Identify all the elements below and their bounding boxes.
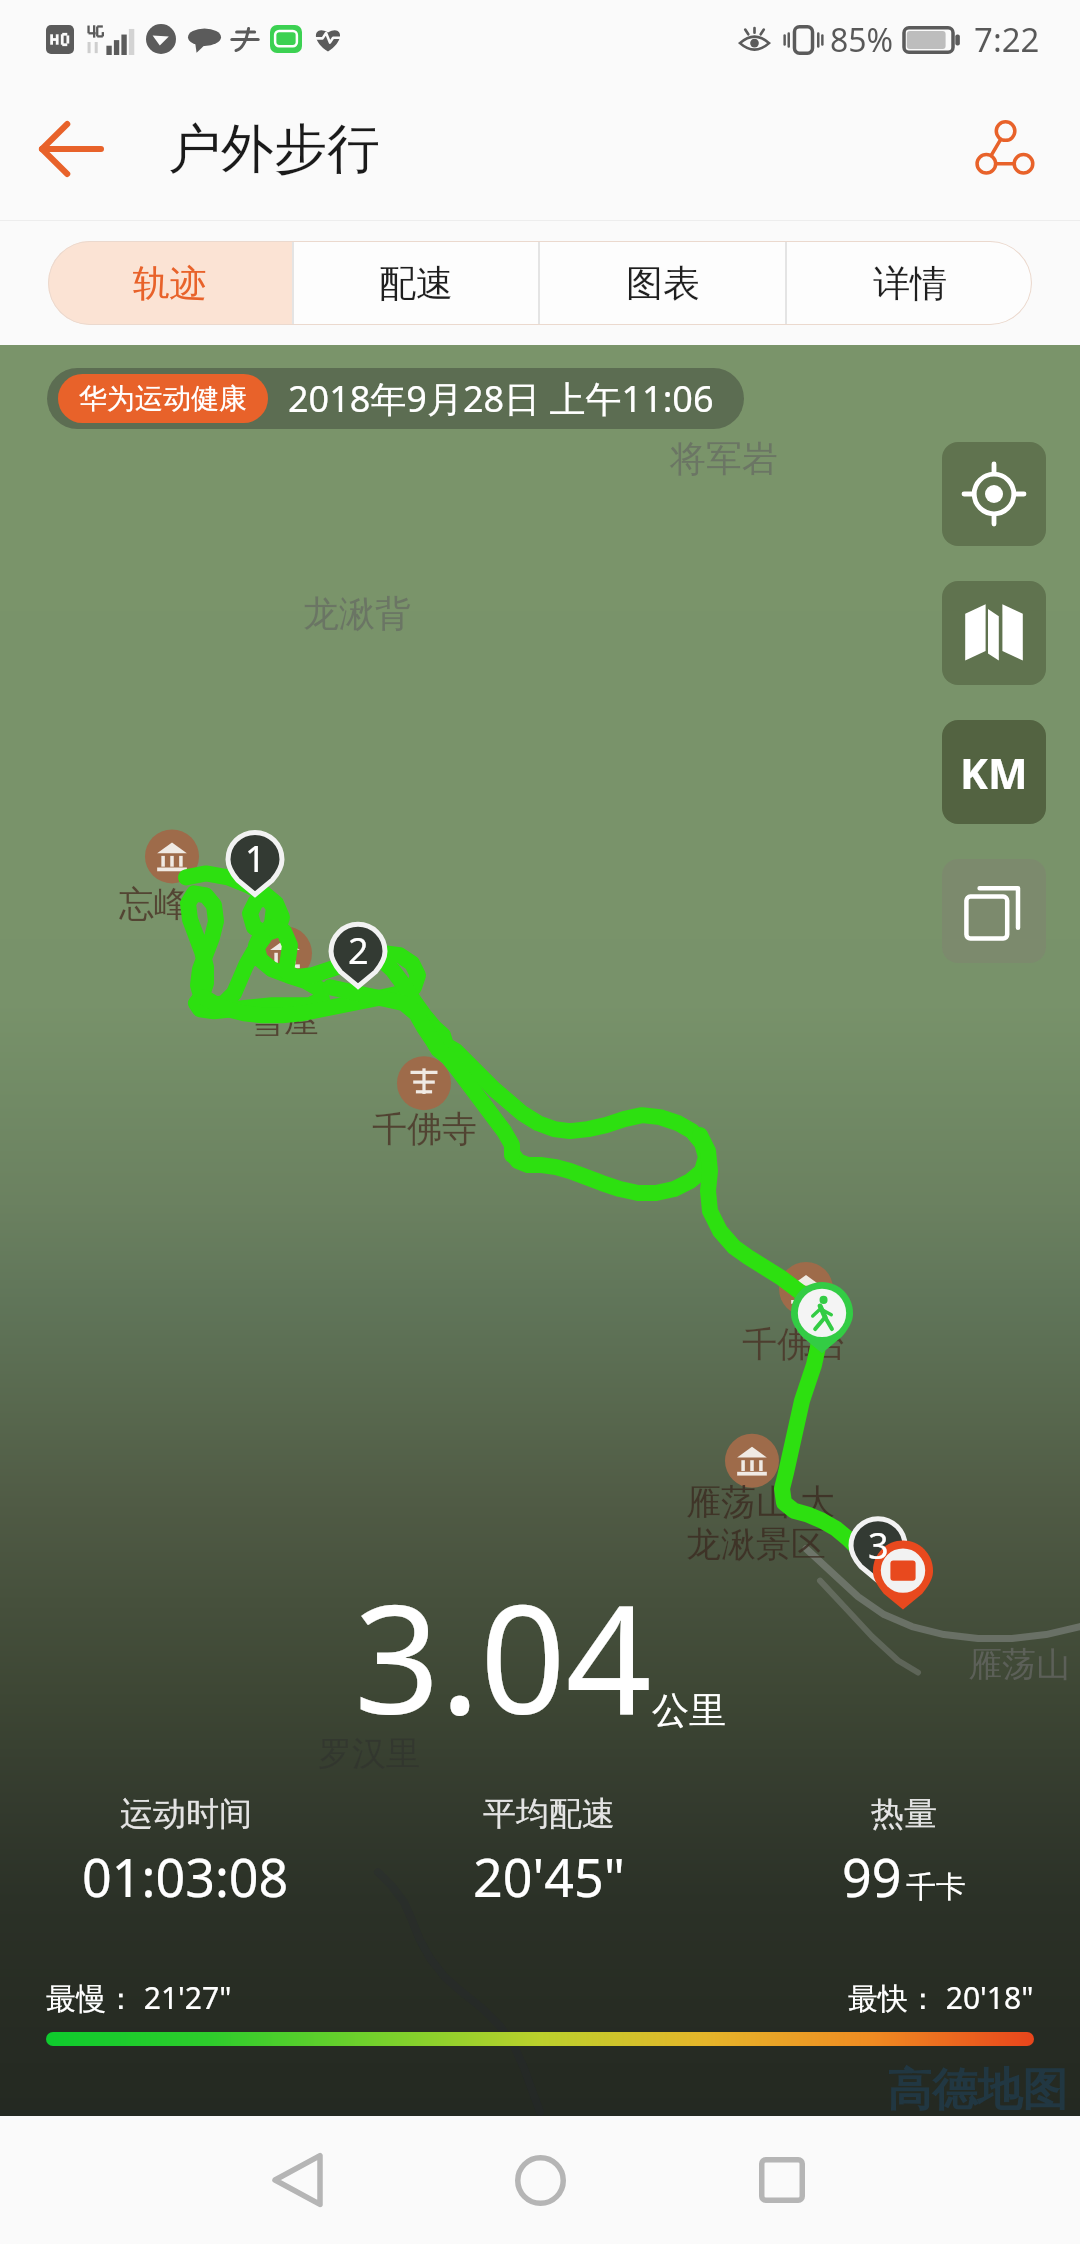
staticText: 20'45": [473, 1841, 625, 1912]
button[interactable]: 详情: [787, 241, 1032, 325]
staticText: 3.04: [354, 1554, 652, 1758]
staticText: 热量: [871, 1793, 937, 1835]
button[interactable]: Locate: [942, 442, 1046, 546]
staticText: 户外步行: [168, 116, 380, 183]
staticText: 最慢： 21'27": [46, 1977, 232, 2018]
staticText: 华为运动健康: [79, 381, 247, 416]
staticText: 2: [348, 926, 369, 968]
button[interactable]: Map type: [942, 581, 1046, 685]
staticText: 99: [842, 1841, 902, 1912]
staticText: 1: [245, 834, 266, 876]
staticText: 图表: [626, 260, 700, 307]
staticText: 85%: [830, 18, 894, 62]
button[interactable]: Back: [26, 104, 116, 194]
staticText: 公里: [652, 1687, 726, 1734]
staticText: 7:22: [974, 17, 1040, 62]
staticText: 平均配速: [483, 1793, 615, 1835]
staticText: 罗汉里: [318, 1732, 420, 1775]
button[interactable]: Share: [960, 106, 1046, 192]
button[interactable]: Layers: [942, 859, 1046, 963]
staticText: 雪屋: [249, 998, 319, 1042]
button[interactable]: Back: [243, 2125, 353, 2235]
button[interactable]: Recents: [727, 2125, 837, 2235]
button[interactable]: Units: [942, 720, 1046, 824]
button[interactable]: Home: [485, 2125, 595, 2235]
staticText: 千佛寺: [372, 1107, 477, 1151]
staticText: 雁荡山 大: [686, 1477, 836, 1525]
staticText: 忘峰: [119, 882, 189, 926]
staticText: 01:03:08: [82, 1841, 289, 1912]
staticText: 高德地图: [887, 2062, 1067, 2119]
button[interactable]: 轨迹: [48, 241, 292, 325]
staticText: 最快： 20'18": [848, 1977, 1034, 2018]
button[interactable]: 配速: [294, 241, 538, 325]
staticText: KM: [960, 744, 1028, 801]
staticText: 配速: [379, 260, 453, 307]
staticText: 将军岩: [670, 436, 778, 481]
staticText: 雁荡山: [968, 1643, 1070, 1686]
staticText: 轨迹: [133, 260, 207, 307]
staticText: 龙湫背: [303, 591, 411, 636]
staticText: 详情: [873, 260, 947, 307]
staticText: 千佛台: [742, 1322, 847, 1366]
staticText: 3: [868, 1521, 889, 1563]
staticText: 龙湫景区: [686, 1522, 826, 1566]
staticText: 千卡: [906, 1868, 966, 1906]
button[interactable]: 图表: [540, 241, 785, 325]
staticText: 2018年9月28日 上午11:06: [288, 374, 714, 423]
staticText: 运动时间: [120, 1793, 252, 1835]
